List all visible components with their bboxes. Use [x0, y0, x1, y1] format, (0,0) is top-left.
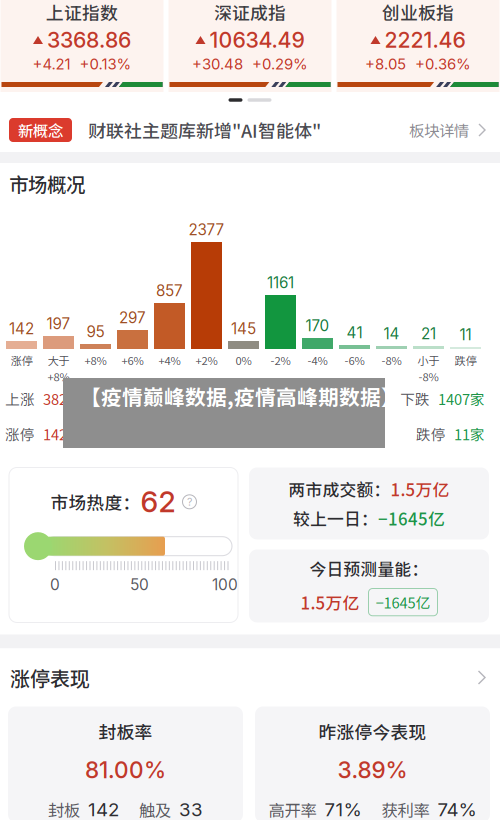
- staticText: 41: [346, 324, 362, 342]
- staticText: 11: [459, 326, 471, 344]
- staticText: 跌停: [416, 423, 446, 444]
- staticText: 142家: [43, 423, 82, 444]
- staticText: 涨停: [10, 352, 32, 368]
- staticText: 较上一日：: [293, 506, 378, 530]
- button[interactable]: 封板率: [8, 706, 243, 820]
- staticText: 50: [130, 575, 149, 594]
- staticText: +0.29%: [252, 55, 308, 73]
- button[interactable]: 昨涨停今表现: [255, 706, 490, 820]
- staticText: 上证指数: [46, 0, 118, 25]
- staticText: 170: [305, 317, 329, 335]
- staticText: 81.00%: [85, 756, 166, 784]
- staticText: ?: [187, 495, 192, 508]
- staticText: 【疫情巅峰数据,疫情高峰期数据】: [80, 381, 402, 411]
- staticText: +30.48: [192, 55, 243, 73]
- staticText: 21: [421, 325, 436, 343]
- button[interactable]: 创业板指: [336, 0, 499, 92]
- staticText: −1645亿: [375, 591, 430, 613]
- staticText: 小于: [417, 352, 439, 368]
- staticText: 昨涨停今表现: [318, 718, 426, 744]
- staticText: 涨停: [5, 423, 35, 444]
- staticText: 板块详情: [409, 119, 469, 141]
- staticText: 142: [9, 320, 34, 338]
- staticText: −1645亿: [378, 506, 445, 530]
- staticText: 2221.46: [384, 27, 465, 53]
- staticText: -4%: [307, 352, 327, 368]
- staticText: 0%: [235, 352, 251, 368]
- staticText: 财联社主题库新增"AI智能体": [88, 117, 321, 143]
- staticText: +6%: [121, 352, 143, 368]
- staticText: 3368.86: [47, 27, 131, 53]
- staticText: 创业板指: [382, 0, 454, 25]
- staticText: +8%: [47, 368, 69, 384]
- staticText: +8%: [84, 352, 106, 368]
- staticText: 857: [156, 282, 183, 300]
- staticText: 11家: [454, 423, 485, 444]
- staticText: -8%: [381, 352, 401, 368]
- staticText: 10634.49: [209, 27, 304, 53]
- staticText: 62: [140, 484, 175, 519]
- staticText: 145: [231, 320, 256, 338]
- staticText: 触及: [139, 798, 171, 820]
- staticText: 0: [50, 575, 60, 594]
- staticText: 71%: [324, 798, 361, 820]
- staticText: 1.5万亿: [390, 477, 449, 501]
- staticText: +2%: [195, 352, 217, 368]
- staticText: 95: [86, 323, 104, 341]
- staticText: 下跌: [400, 388, 430, 409]
- staticText: 市场概况: [9, 169, 85, 198]
- staticText: 33: [179, 798, 203, 820]
- staticText: 10家: [243, 388, 274, 409]
- staticText: -6%: [344, 352, 364, 368]
- button[interactable]: 上证指数: [0, 0, 163, 92]
- staticText: 3823家: [43, 388, 90, 409]
- staticText: 14: [383, 325, 399, 343]
- staticText: 197: [46, 315, 70, 333]
- button[interactable]: 涨停表现: [0, 648, 500, 706]
- staticText: +0.13%: [79, 55, 131, 73]
- staticText: -8%: [418, 368, 438, 384]
- staticText: 1407家: [438, 388, 485, 409]
- staticText: 市场热度：: [50, 489, 140, 515]
- staticText: 新概念: [18, 119, 63, 141]
- staticText: +4%: [158, 352, 180, 368]
- staticText: 深证成指: [214, 0, 286, 25]
- staticText: 今日预测量能：: [309, 556, 428, 580]
- staticText: 两市成交额：: [288, 477, 390, 501]
- staticText: 100: [212, 575, 238, 594]
- staticText: 跌停: [454, 352, 476, 368]
- staticText: 3.89%: [337, 756, 407, 784]
- staticText: +4.21: [32, 55, 70, 73]
- staticText: 142: [88, 798, 119, 820]
- staticText: 2377: [188, 221, 224, 239]
- staticText: 平盘: [205, 388, 235, 409]
- staticText: 封板: [48, 798, 80, 820]
- staticText: +0.36%: [415, 55, 471, 73]
- staticText: 74%: [437, 798, 476, 820]
- staticText: 大于: [47, 352, 69, 368]
- staticText: -2%: [270, 352, 290, 368]
- staticText: 1161: [267, 274, 294, 292]
- staticText: 297: [119, 309, 146, 327]
- staticText: 1.5万亿: [300, 590, 359, 614]
- button[interactable]: 新概念: [0, 108, 500, 152]
- button[interactable]: 深证成指: [168, 0, 331, 92]
- staticText: +8.05: [365, 55, 406, 73]
- staticText: 涨停表现: [10, 663, 90, 692]
- staticText: 封板率: [98, 718, 152, 744]
- staticText: 高开率: [268, 798, 316, 820]
- staticText: 上涨: [5, 388, 35, 409]
- staticText: 获利率: [381, 798, 429, 820]
